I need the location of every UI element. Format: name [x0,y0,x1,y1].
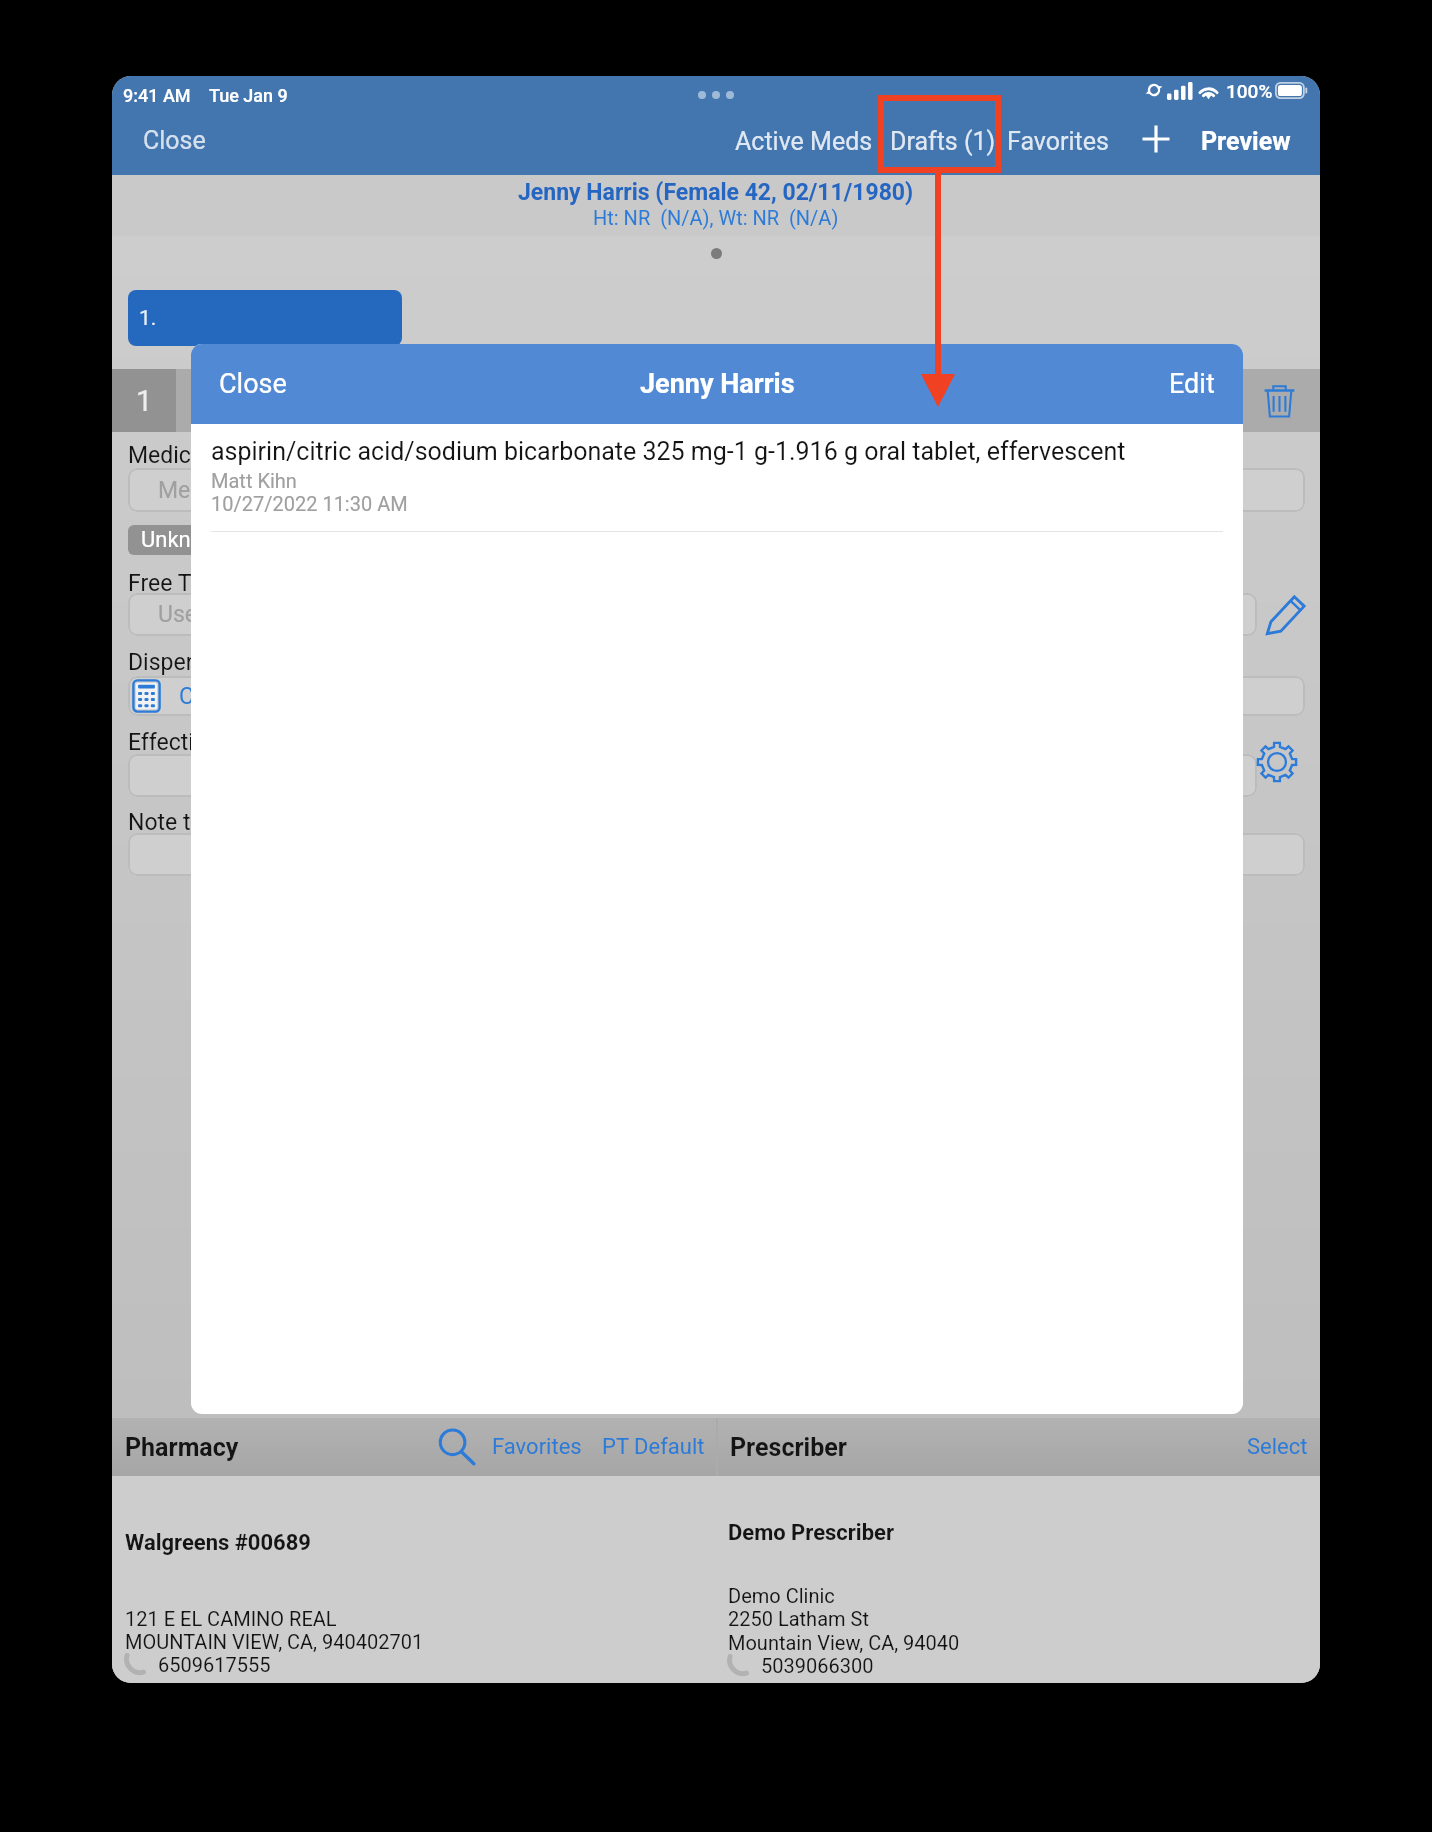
staticText: Use Free Text Sig [158,601,334,628]
staticText: Matt Kihn [211,469,297,492]
button[interactable]: aspirin/citric acid/sodium bicarbonate 3… [191,424,1243,527]
staticText: Pharmacy [125,1433,239,1462]
staticText: Close [219,368,287,400]
button[interactable]: PT Default [598,1426,709,1468]
button[interactable]: Add medication [1134,117,1178,161]
button[interactable]: Settings [1251,736,1303,788]
staticText: Medication [128,442,243,469]
staticText: 5039066300 [761,1654,874,1677]
button[interactable]: Use Free Text Sig [128,593,1257,636]
staticText: Select [1247,1434,1308,1460]
button[interactable]: Medication Name [128,468,1305,512]
staticText: Demo Prescriber [728,1520,894,1546]
staticText: Jenny Harris (Female 42, 02/11/1980) [518,179,914,206]
staticText: Dispense Quantity [128,649,314,676]
staticText: Preview [1201,127,1291,156]
button[interactable]: Close [213,360,293,408]
button[interactable]: Delete [1252,374,1306,428]
staticText: Ht: NR (N/A), Wt: NR (N/A) [593,206,839,229]
button[interactable]: Edit [1260,589,1312,641]
staticText: Free Text Sig [128,570,260,597]
staticText: Active Meds [735,127,873,156]
staticText: 6509617555 [158,1653,271,1676]
button[interactable] [128,833,1305,876]
button[interactable]: Search pharmacy [435,1425,479,1469]
staticText: Favorites [492,1434,582,1460]
staticText: Unknown [141,527,232,553]
button[interactable]: Select [1243,1426,1312,1468]
staticText: Edit [1169,368,1215,400]
staticText: Note to Pharmacy [128,809,313,836]
button[interactable]: 1. [128,290,402,346]
staticText: Tue Jan 9 [209,85,288,106]
staticText: Walgreens #00689 [125,1530,311,1556]
button[interactable]: Jenny Harris (Female 42, 02/11/1980) [112,175,1320,236]
button[interactable]: Edit [1163,360,1221,408]
staticText: 10/27/2022 11:30 AM [211,492,408,515]
staticText: MOUNTAIN VIEW, CA, 940402701 [125,1630,424,1653]
staticText: Jenny Harris [640,368,795,400]
staticText: 100% [1226,80,1273,102]
staticText: 2250 Latham St [728,1607,869,1630]
staticText: 1 [136,384,153,418]
staticText: Calculate [179,683,275,710]
button[interactable]: Close [137,118,212,163]
staticText: Prescriber [730,1433,847,1462]
button[interactable]: Preview [1192,118,1300,165]
button[interactable]: Favorites [488,1426,586,1468]
staticText: Favorites [1007,127,1109,156]
staticText: 9:41 AM [123,85,191,106]
staticText: 1. [139,306,157,331]
staticText: Close [143,126,206,155]
button[interactable]: Active Meds [726,118,882,165]
staticText: Mountain View, CA, 94040 [728,1631,960,1654]
button[interactable]: Favorites [998,118,1118,165]
staticText: PT Default [602,1434,705,1460]
staticText: Medication Name [158,477,340,504]
button[interactable] [128,754,1257,797]
button[interactable]: Drafts (1) [881,118,1005,165]
button[interactable]: Calculate [128,676,1305,716]
button[interactable]: Unknown [128,525,313,555]
staticText: 121 E EL CAMINO REAL [125,1607,337,1630]
staticText: aspirin/citric acid/sodium bicarbonate 3… [211,437,1126,466]
staticText: Demo Clinic [728,1584,835,1607]
staticText: Effective Date [128,729,271,756]
staticText: Drafts (1) [890,127,996,156]
button[interactable]: 1 [112,369,176,432]
